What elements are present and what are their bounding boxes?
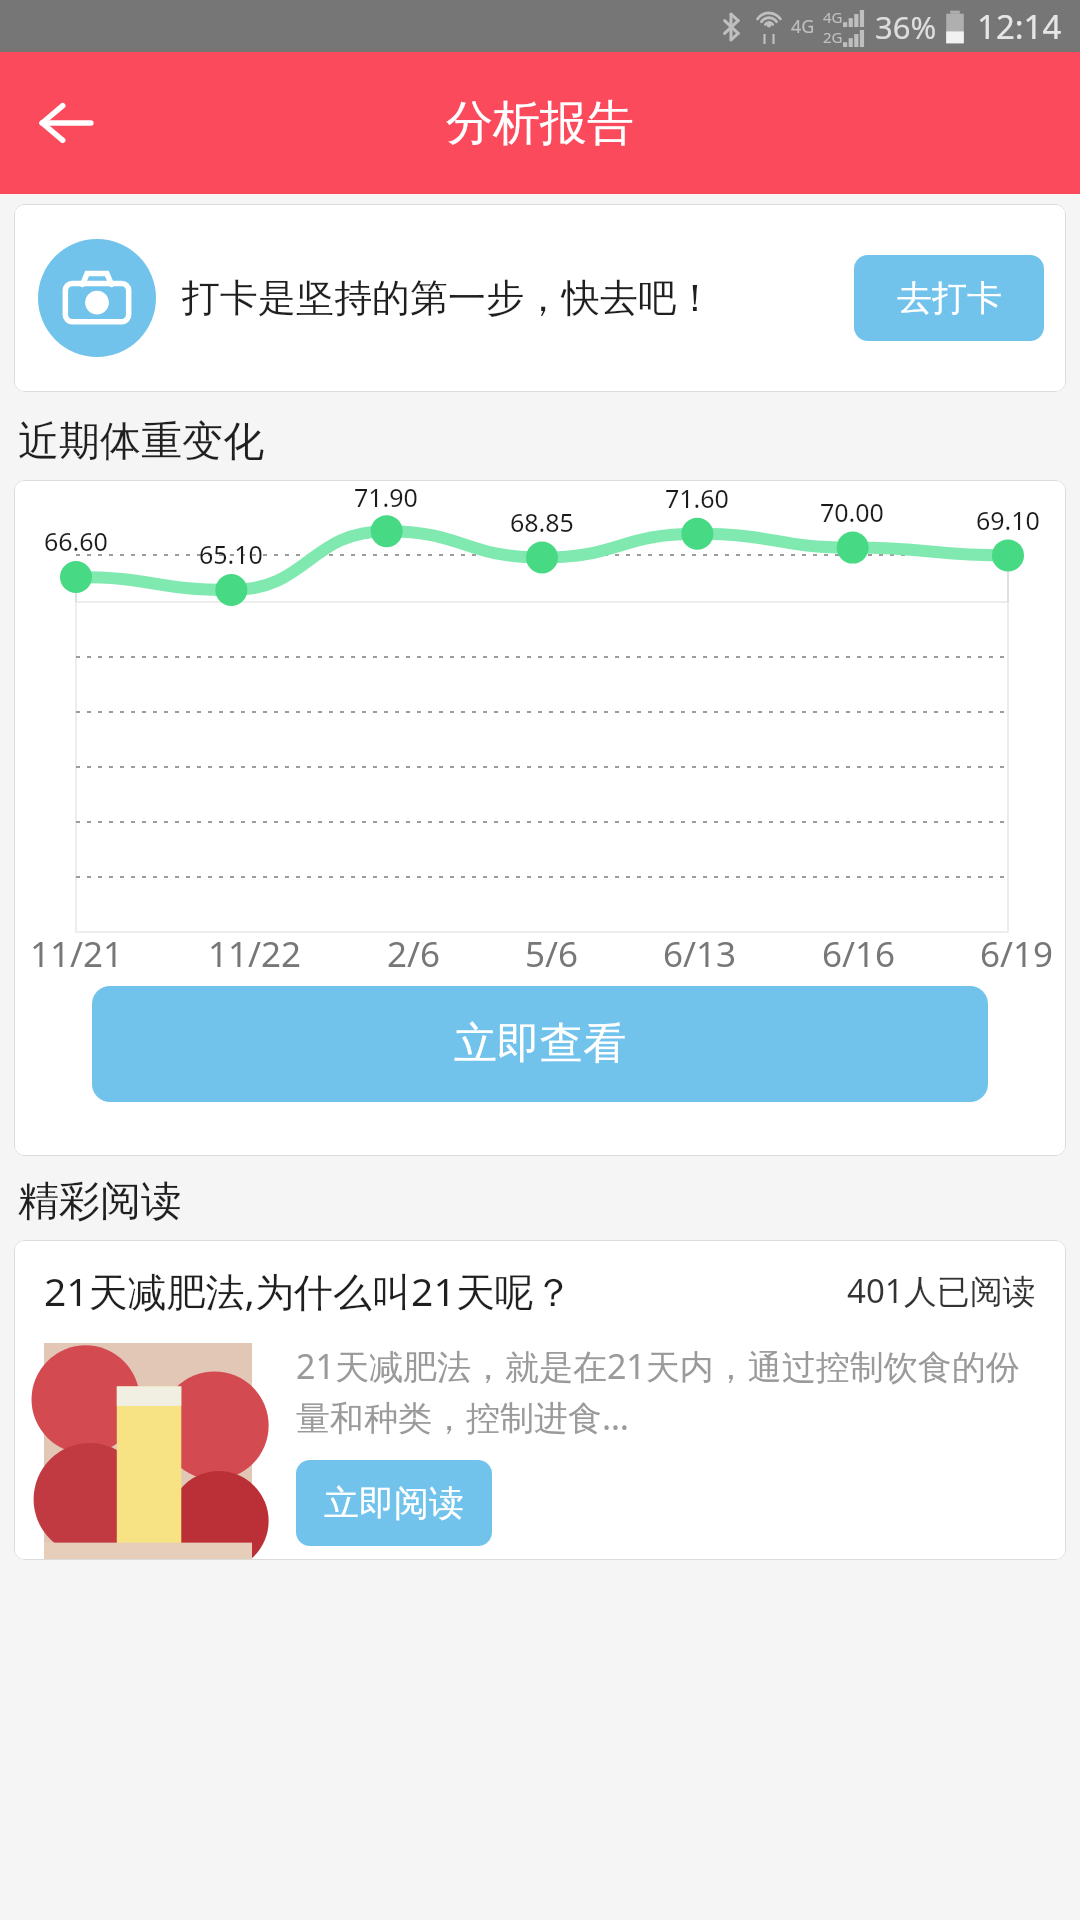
staticText: 11/22: [208, 930, 302, 978]
button[interactable]: 立即查看: [92, 986, 988, 1102]
button[interactable]: Back: [24, 81, 108, 165]
staticText: 71.60: [665, 481, 729, 515]
staticText: 精彩阅读: [18, 1176, 182, 1228]
staticText: 去打卡: [897, 276, 1002, 320]
staticText: 71.90: [354, 480, 418, 514]
staticText: 66.60: [44, 524, 108, 558]
button[interactable]: 立即阅读: [296, 1460, 492, 1546]
staticText: 12:14: [977, 4, 1062, 49]
staticText: 立即阅读: [324, 1481, 464, 1525]
staticText: 68.85: [510, 505, 574, 539]
staticText: 4G: [823, 7, 843, 27]
staticText: 36%: [875, 6, 937, 48]
staticText: 69.10: [976, 503, 1040, 537]
staticText: 11/21: [30, 930, 124, 978]
staticText: 6/13: [663, 930, 737, 978]
staticText: 401人已阅读: [847, 1268, 1036, 1313]
button[interactable]: Camera check in: [38, 239, 156, 357]
staticText: 70.00: [820, 495, 884, 529]
staticText: 6/16: [822, 930, 896, 978]
button[interactable]: 21天减肥法,为什么叫21天呢？: [14, 1240, 1066, 1560]
staticText: 4G: [791, 14, 815, 39]
staticText: 近期体重变化: [18, 416, 264, 468]
staticText: 6/19: [980, 930, 1054, 978]
staticText: 21天减肥法，就是在21天内，通过控制饮食的份量和种类，控制进食…: [296, 1343, 1036, 1440]
staticText: 2G: [823, 27, 843, 47]
staticText: 5/6: [525, 930, 579, 978]
staticText: 2/6: [387, 930, 441, 978]
staticText: 打卡是坚持的第一步，快去吧！: [182, 274, 714, 322]
staticText: 21天减肥法,为什么叫21天呢？: [44, 1264, 573, 1317]
staticText: 分析报告: [446, 94, 634, 153]
staticText: 65.10: [199, 537, 263, 571]
button[interactable]: 去打卡: [854, 255, 1044, 341]
staticText: 立即查看: [454, 1017, 626, 1071]
